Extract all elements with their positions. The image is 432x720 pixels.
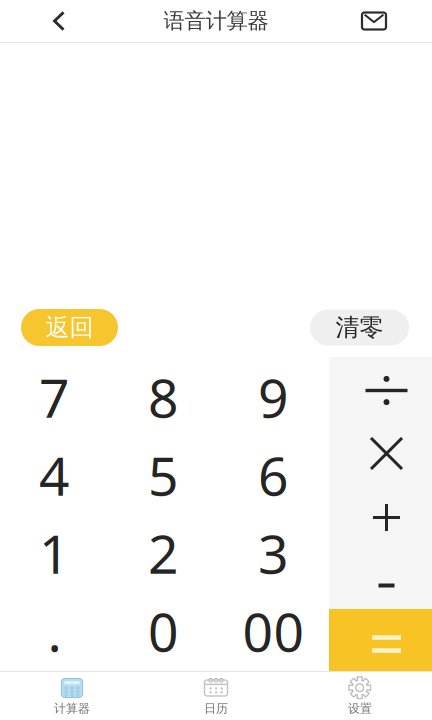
staticText: 7	[39, 362, 70, 432]
staticText: 1	[39, 518, 70, 588]
button[interactable]: 除	[329, 357, 432, 420]
staticText: 8	[148, 362, 179, 432]
staticText: 5	[148, 440, 179, 510]
button[interactable]: 8	[109, 358, 218, 436]
staticText: 00	[242, 596, 304, 666]
button[interactable]: .	[0, 592, 109, 670]
staticText: 设置	[348, 701, 372, 716]
button[interactable]: 乘	[329, 420, 432, 483]
staticText: 清零	[335, 313, 383, 342]
button[interactable]: 2	[109, 514, 218, 592]
button[interactable]: 3	[218, 514, 329, 592]
staticText: 日历	[204, 701, 228, 716]
button[interactable]: 设置	[288, 671, 432, 720]
button[interactable]: 返回	[21, 309, 118, 346]
staticText: 3	[258, 518, 289, 588]
button[interactable]: 返回	[32, 0, 86, 42]
button[interactable]: 4	[0, 436, 109, 514]
staticText: 6	[258, 440, 289, 510]
button[interactable]: 6	[218, 436, 329, 514]
button[interactable]: 减	[329, 546, 432, 609]
button[interactable]: 计算器	[0, 671, 144, 720]
button[interactable]: 等于	[329, 609, 432, 671]
button[interactable]: 加	[329, 483, 432, 546]
staticText: 0	[148, 596, 179, 666]
staticText: 9	[258, 362, 289, 432]
button[interactable]: 清零	[310, 309, 409, 345]
button[interactable]: 5	[109, 436, 218, 514]
button[interactable]: 7	[0, 358, 109, 436]
staticText: 语音计算器	[163, 8, 268, 34]
button[interactable]: 日历	[144, 671, 288, 720]
button[interactable]: 0	[109, 592, 218, 670]
button[interactable]: 9	[218, 358, 329, 436]
staticText: .	[47, 596, 61, 666]
button[interactable]: 00	[218, 592, 329, 670]
staticText: 2	[148, 518, 179, 588]
button[interactable]: 1	[0, 514, 109, 592]
staticText: 返回	[45, 313, 93, 342]
staticText: 4	[39, 440, 70, 510]
button[interactable]: 消息	[345, 0, 403, 42]
staticText: 计算器	[54, 701, 90, 716]
